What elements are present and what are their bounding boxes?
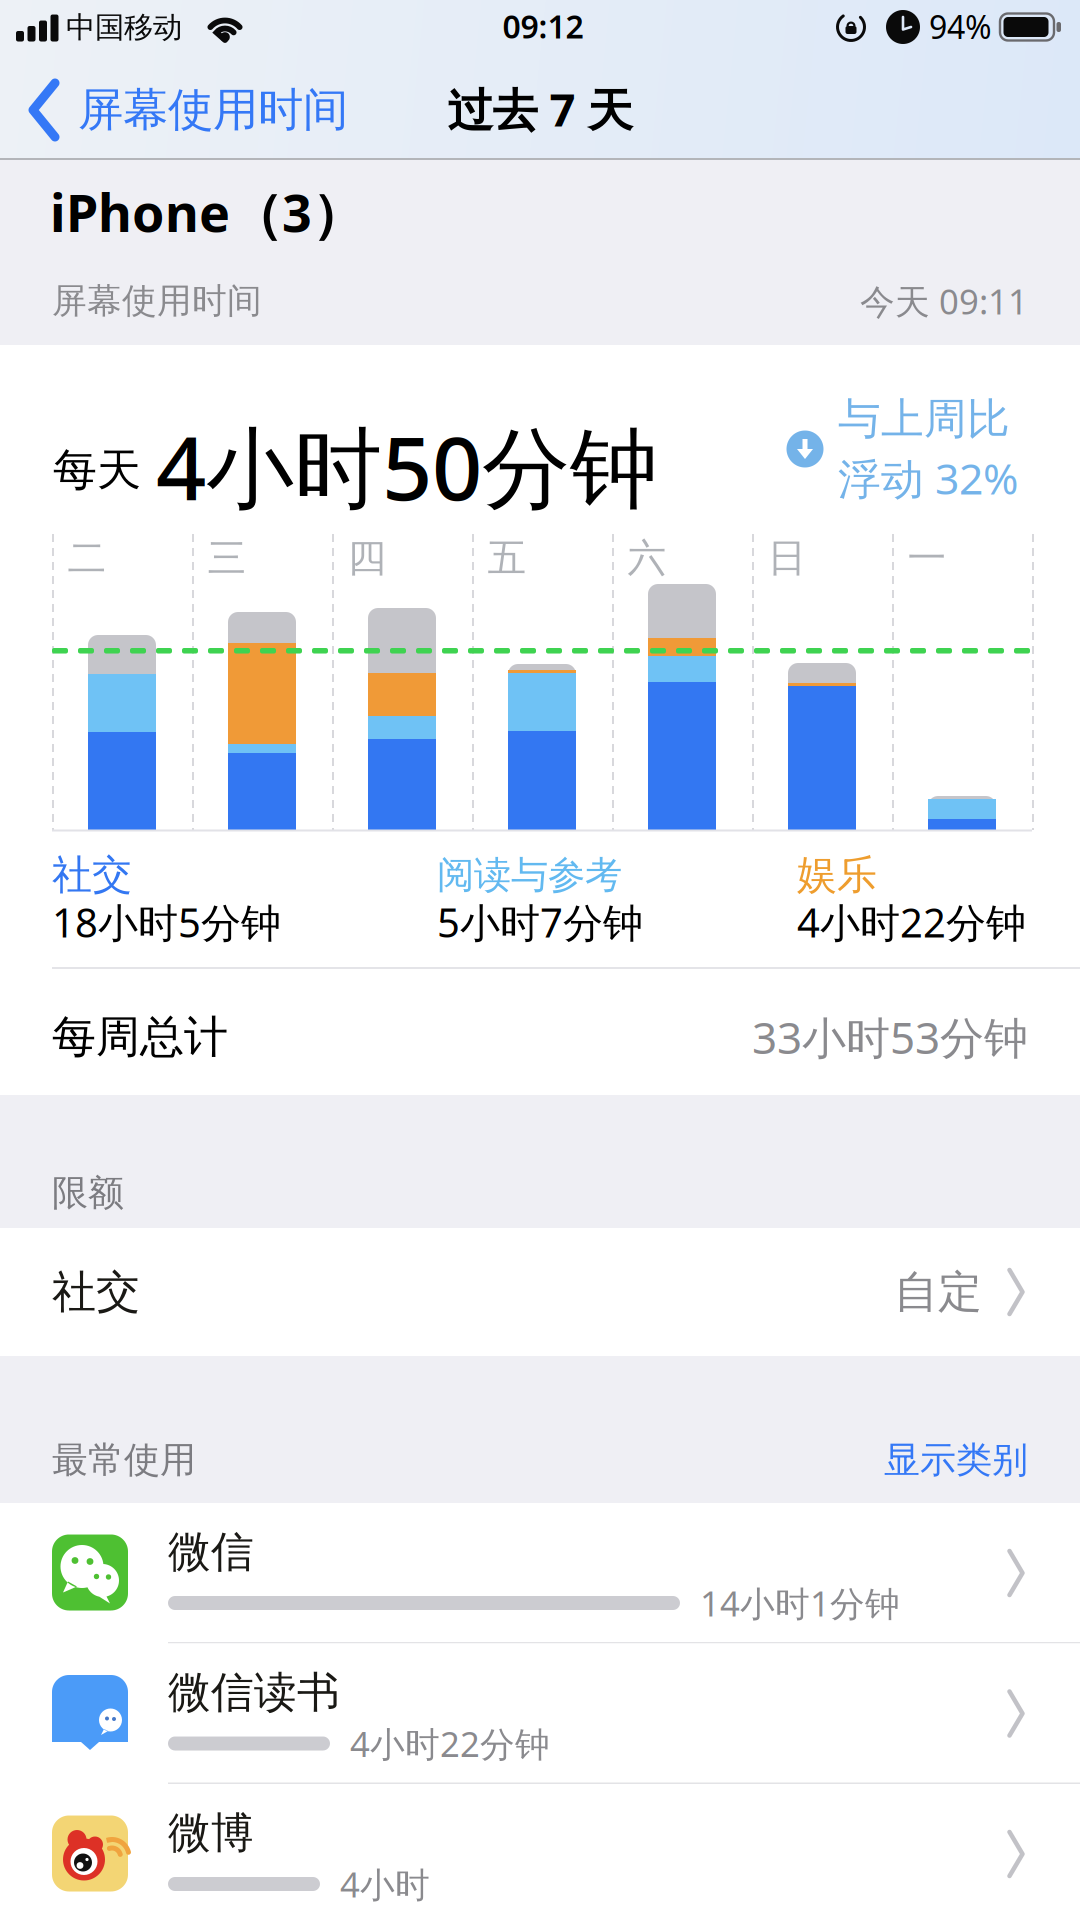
staticText: 四 <box>347 534 386 582</box>
staticText: 屏幕使用时间 <box>78 82 348 138</box>
staticText: 今天 09:11 <box>860 278 1028 324</box>
button[interactable]: 屏幕使用时间 <box>22 74 358 146</box>
staticText: 4小时 <box>340 1861 430 1907</box>
staticText: 六 <box>627 534 666 582</box>
staticText: 09:12 <box>502 5 583 47</box>
button[interactable]: 微博 <box>0 1784 1080 1920</box>
staticText: iPhone（3） <box>50 177 364 247</box>
staticText: 微博 <box>168 1807 254 1859</box>
staticText: 4小时50分钟 <box>156 408 658 524</box>
button[interactable]: 微信 <box>0 1503 1080 1643</box>
staticText: 五 <box>487 534 526 582</box>
staticText: 娱乐 <box>797 850 877 899</box>
staticText: 一 <box>907 534 946 582</box>
staticText: 浮动 32% <box>838 450 1018 506</box>
staticText: 显示类别 <box>884 1438 1028 1482</box>
staticText: 每周总计 <box>52 1010 228 1064</box>
staticText: 二 <box>67 534 106 582</box>
staticText: 4小时22分钟 <box>350 1720 550 1766</box>
staticText: 94% <box>929 5 992 48</box>
staticText: 最常使用 <box>52 1438 196 1482</box>
staticText: 每天 <box>53 443 141 497</box>
staticText: 微信 <box>168 1526 254 1578</box>
staticText: 日 <box>767 534 806 582</box>
staticText: 5小时7分钟 <box>437 895 643 948</box>
staticText: 屏幕使用时间 <box>52 280 262 322</box>
staticText: 与上周比 <box>838 393 1010 445</box>
staticText: 阅读与参考 <box>437 852 622 898</box>
staticText: 限额 <box>52 1171 124 1215</box>
staticText: 过去 7 天 <box>447 79 632 139</box>
staticText: 微信读书 <box>168 1666 340 1719</box>
staticText: 社交 <box>52 850 132 899</box>
staticText: 4小时22分钟 <box>797 895 1026 948</box>
staticText: 14小时1分钟 <box>700 1580 900 1626</box>
button[interactable]: 显示类别 <box>728 1438 1028 1482</box>
staticText: 自定 <box>894 1265 982 1319</box>
button[interactable]: 社交 <box>0 1228 1080 1356</box>
button[interactable]: 微信读书 <box>0 1643 1080 1784</box>
staticText: 社交 <box>52 1265 140 1319</box>
staticText: 18小时5分钟 <box>52 895 281 948</box>
staticText: 33小时53分钟 <box>752 1008 1028 1066</box>
staticText: 三 <box>207 534 246 582</box>
staticText: 中国移动 <box>66 9 182 45</box>
